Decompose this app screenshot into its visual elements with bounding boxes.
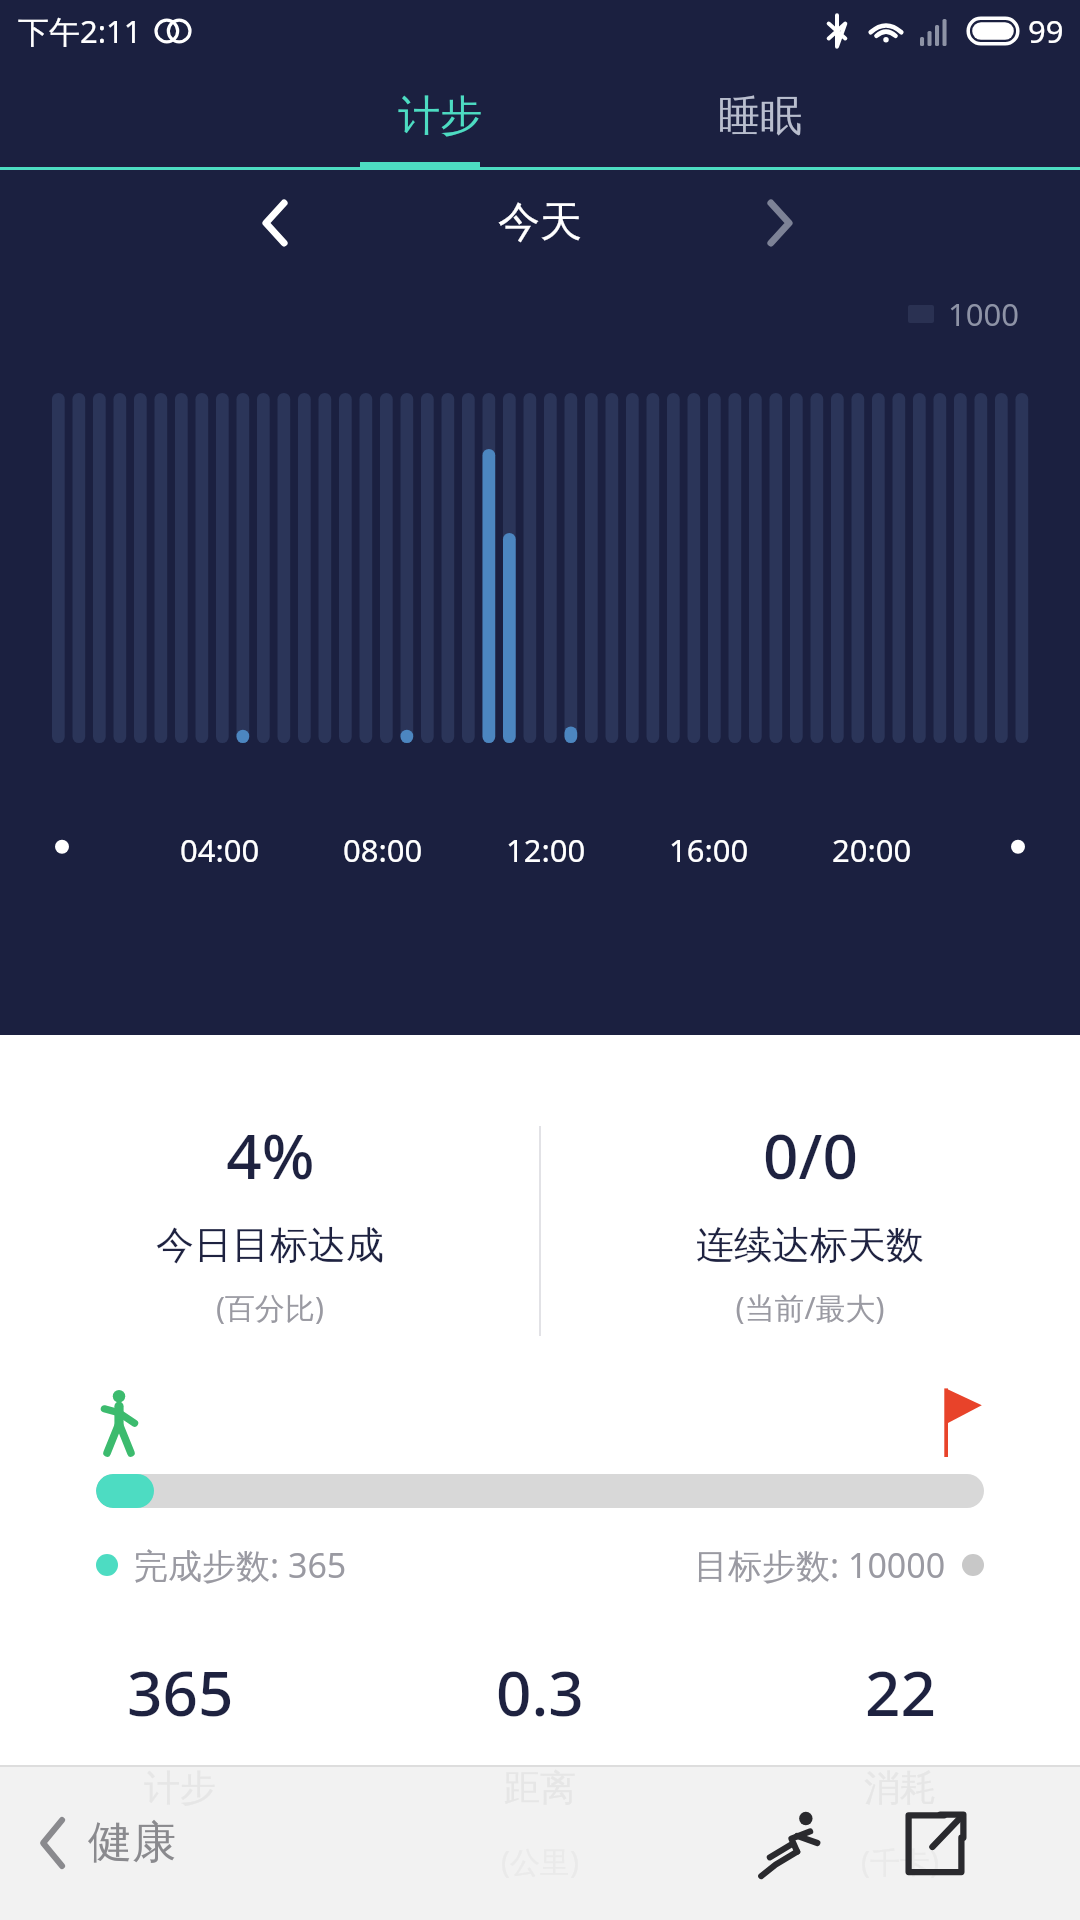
staticText: 0.3 xyxy=(496,1650,584,1734)
staticText: 0/0 xyxy=(763,1113,858,1197)
button[interactable]: Next day xyxy=(735,178,825,268)
staticText: (百分比) xyxy=(216,1287,324,1328)
staticText: 计步 xyxy=(398,90,482,143)
staticText: 消耗 xyxy=(864,1765,936,1810)
staticText: 22 xyxy=(865,1650,936,1734)
button[interactable]: 今天 xyxy=(498,196,582,249)
button[interactable]: 22 xyxy=(720,1650,1080,1800)
button[interactable] xyxy=(96,1474,984,1508)
staticText: (千卡) xyxy=(861,1841,939,1882)
button[interactable]: Share xyxy=(880,1788,990,1898)
button[interactable]: 4% xyxy=(0,1113,540,1348)
staticText: 睡眠 xyxy=(718,90,802,143)
staticText: 16:00 xyxy=(669,829,749,871)
staticText: 1000 xyxy=(948,293,1019,335)
staticText: 距离 xyxy=(504,1765,576,1810)
staticText: 04:00 xyxy=(180,829,260,871)
button[interactable]: Previous day xyxy=(230,178,320,268)
staticText: 20:00 xyxy=(832,829,912,871)
staticText: 今天 xyxy=(498,196,582,249)
staticText: 365 xyxy=(127,1650,234,1734)
button[interactable]: Activity xyxy=(735,1788,845,1898)
staticText: 99 xyxy=(1028,10,1064,52)
staticText: 计步 xyxy=(144,1765,216,1810)
staticText: 4% xyxy=(226,1113,315,1197)
staticText: (当前/最大) xyxy=(735,1287,885,1328)
button[interactable]: 计步 xyxy=(320,62,560,170)
staticText: 完成步数: 365 xyxy=(134,1542,347,1588)
button[interactable]: 0.3 xyxy=(360,1650,720,1800)
staticText: 目标步数: 10000 xyxy=(694,1542,946,1588)
button[interactable]: 0/0 xyxy=(540,1113,1080,1348)
staticText: 健康 xyxy=(88,1815,176,1870)
button[interactable]: 睡眠 xyxy=(640,62,880,170)
button[interactable]: 健康 xyxy=(40,1815,176,1870)
staticText: 08:00 xyxy=(343,829,423,871)
staticText: 下午2:11 xyxy=(18,10,142,52)
staticText: 今日目标达成 xyxy=(156,1221,384,1269)
staticText: 12:00 xyxy=(506,829,586,871)
button[interactable]: 365 xyxy=(0,1650,360,1800)
staticText: 连续达标天数 xyxy=(696,1221,924,1269)
